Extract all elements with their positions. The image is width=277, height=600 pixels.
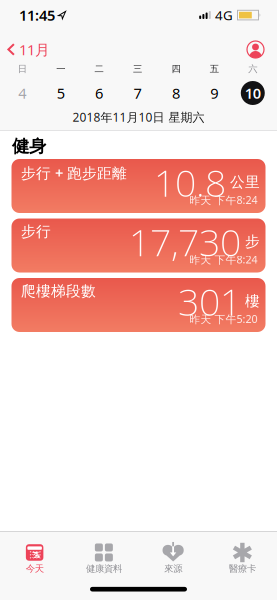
staticText: 步行 + 跑步距離 bbox=[21, 163, 127, 182]
staticText: 17,730 bbox=[129, 217, 241, 267]
button[interactable]: 來源 bbox=[138, 532, 208, 574]
staticText: 10 bbox=[245, 83, 261, 103]
button[interactable]: 7 bbox=[118, 83, 157, 103]
button[interactable]: 11月 bbox=[0, 40, 50, 59]
button[interactable]: 步行 + 跑步距離 bbox=[11, 159, 265, 213]
staticText: 樓 bbox=[245, 292, 260, 310]
staticText: 昨天 下午8:24 bbox=[189, 252, 257, 266]
button[interactable]: 5 bbox=[41, 83, 80, 103]
staticText: 三 bbox=[133, 63, 142, 75]
staticText: 301 bbox=[178, 276, 241, 326]
button[interactable]: 9 bbox=[195, 83, 233, 103]
staticText: 六 bbox=[248, 63, 257, 75]
staticText: 公里 bbox=[230, 173, 260, 191]
button[interactable]: 6 bbox=[80, 83, 118, 103]
staticText: 健康資料 bbox=[86, 563, 122, 574]
staticText: 4G bbox=[215, 6, 233, 24]
button[interactable]: 10 bbox=[234, 81, 272, 105]
staticText: 7 bbox=[133, 83, 141, 103]
staticText: 11:45 bbox=[19, 5, 55, 25]
staticText: 步行 bbox=[21, 222, 51, 240]
button[interactable]: 步行 bbox=[11, 218, 265, 272]
staticText: 健身 bbox=[12, 136, 46, 157]
staticText: 今天 bbox=[26, 563, 44, 574]
staticText: 昨天 下午5:20 bbox=[189, 312, 257, 326]
staticText: 10.8 bbox=[154, 157, 226, 207]
staticText: 步 bbox=[245, 232, 260, 250]
staticText: 爬樓梯段數 bbox=[21, 282, 96, 300]
button[interactable]: 今天 bbox=[0, 532, 69, 574]
staticText: 四 bbox=[171, 63, 180, 75]
staticText: 5 bbox=[57, 83, 65, 103]
staticText: 二 bbox=[95, 63, 104, 75]
button[interactable]: 健康資料 bbox=[69, 532, 138, 574]
staticText: 昨天 下午8:24 bbox=[189, 193, 257, 207]
button[interactable]: 8 bbox=[157, 83, 195, 103]
button[interactable]: 爬樓梯段數 bbox=[11, 278, 265, 332]
staticText: 8 bbox=[172, 83, 180, 103]
button[interactable]: 醫療卡 bbox=[208, 532, 277, 574]
staticText: 來源 bbox=[164, 563, 182, 574]
staticText: 9 bbox=[210, 83, 218, 103]
staticText: 4 bbox=[18, 83, 26, 103]
staticText: 11月 bbox=[19, 40, 50, 59]
staticText: 日 bbox=[18, 63, 27, 75]
button[interactable]: 4 bbox=[3, 83, 41, 103]
staticText: 2018年11月10日 星期六 bbox=[72, 109, 204, 125]
staticText: 6 bbox=[95, 83, 103, 103]
button[interactable] bbox=[247, 41, 277, 58]
staticText: 一 bbox=[56, 63, 65, 75]
staticText: 醫療卡 bbox=[229, 563, 256, 574]
staticText: 五 bbox=[210, 63, 219, 75]
